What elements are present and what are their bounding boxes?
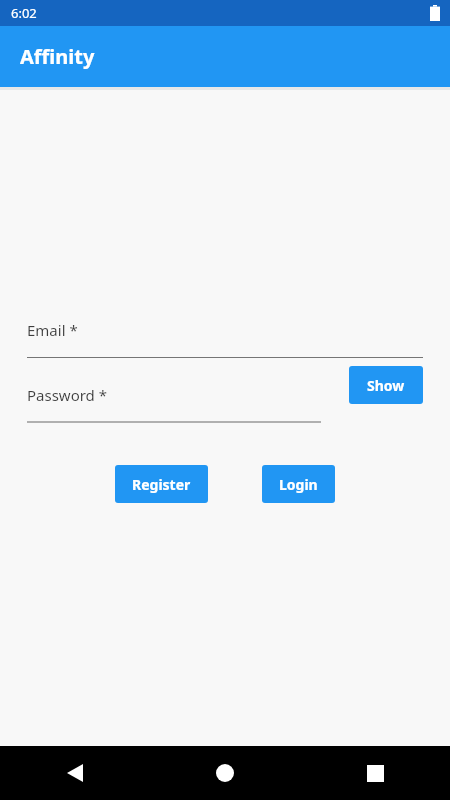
button[interactable]: Home: [150, 746, 300, 800]
staticText: Login: [279, 475, 318, 494]
staticText: Email *: [27, 320, 78, 340]
staticText: Password *: [27, 385, 108, 405]
button[interactable]: Password *: [0, 366, 321, 423]
button[interactable]: Register: [115, 465, 208, 503]
button[interactable]: Email *: [0, 312, 450, 358]
staticText: Affinity: [20, 43, 95, 70]
button[interactable]: Recent apps: [300, 746, 450, 800]
staticText: Show: [367, 376, 405, 395]
staticText: Register: [132, 475, 191, 494]
button[interactable]: Login: [262, 465, 335, 503]
staticText: 6:02: [11, 4, 37, 22]
button[interactable]: Show: [349, 366, 423, 404]
button[interactable]: Back: [0, 746, 150, 800]
